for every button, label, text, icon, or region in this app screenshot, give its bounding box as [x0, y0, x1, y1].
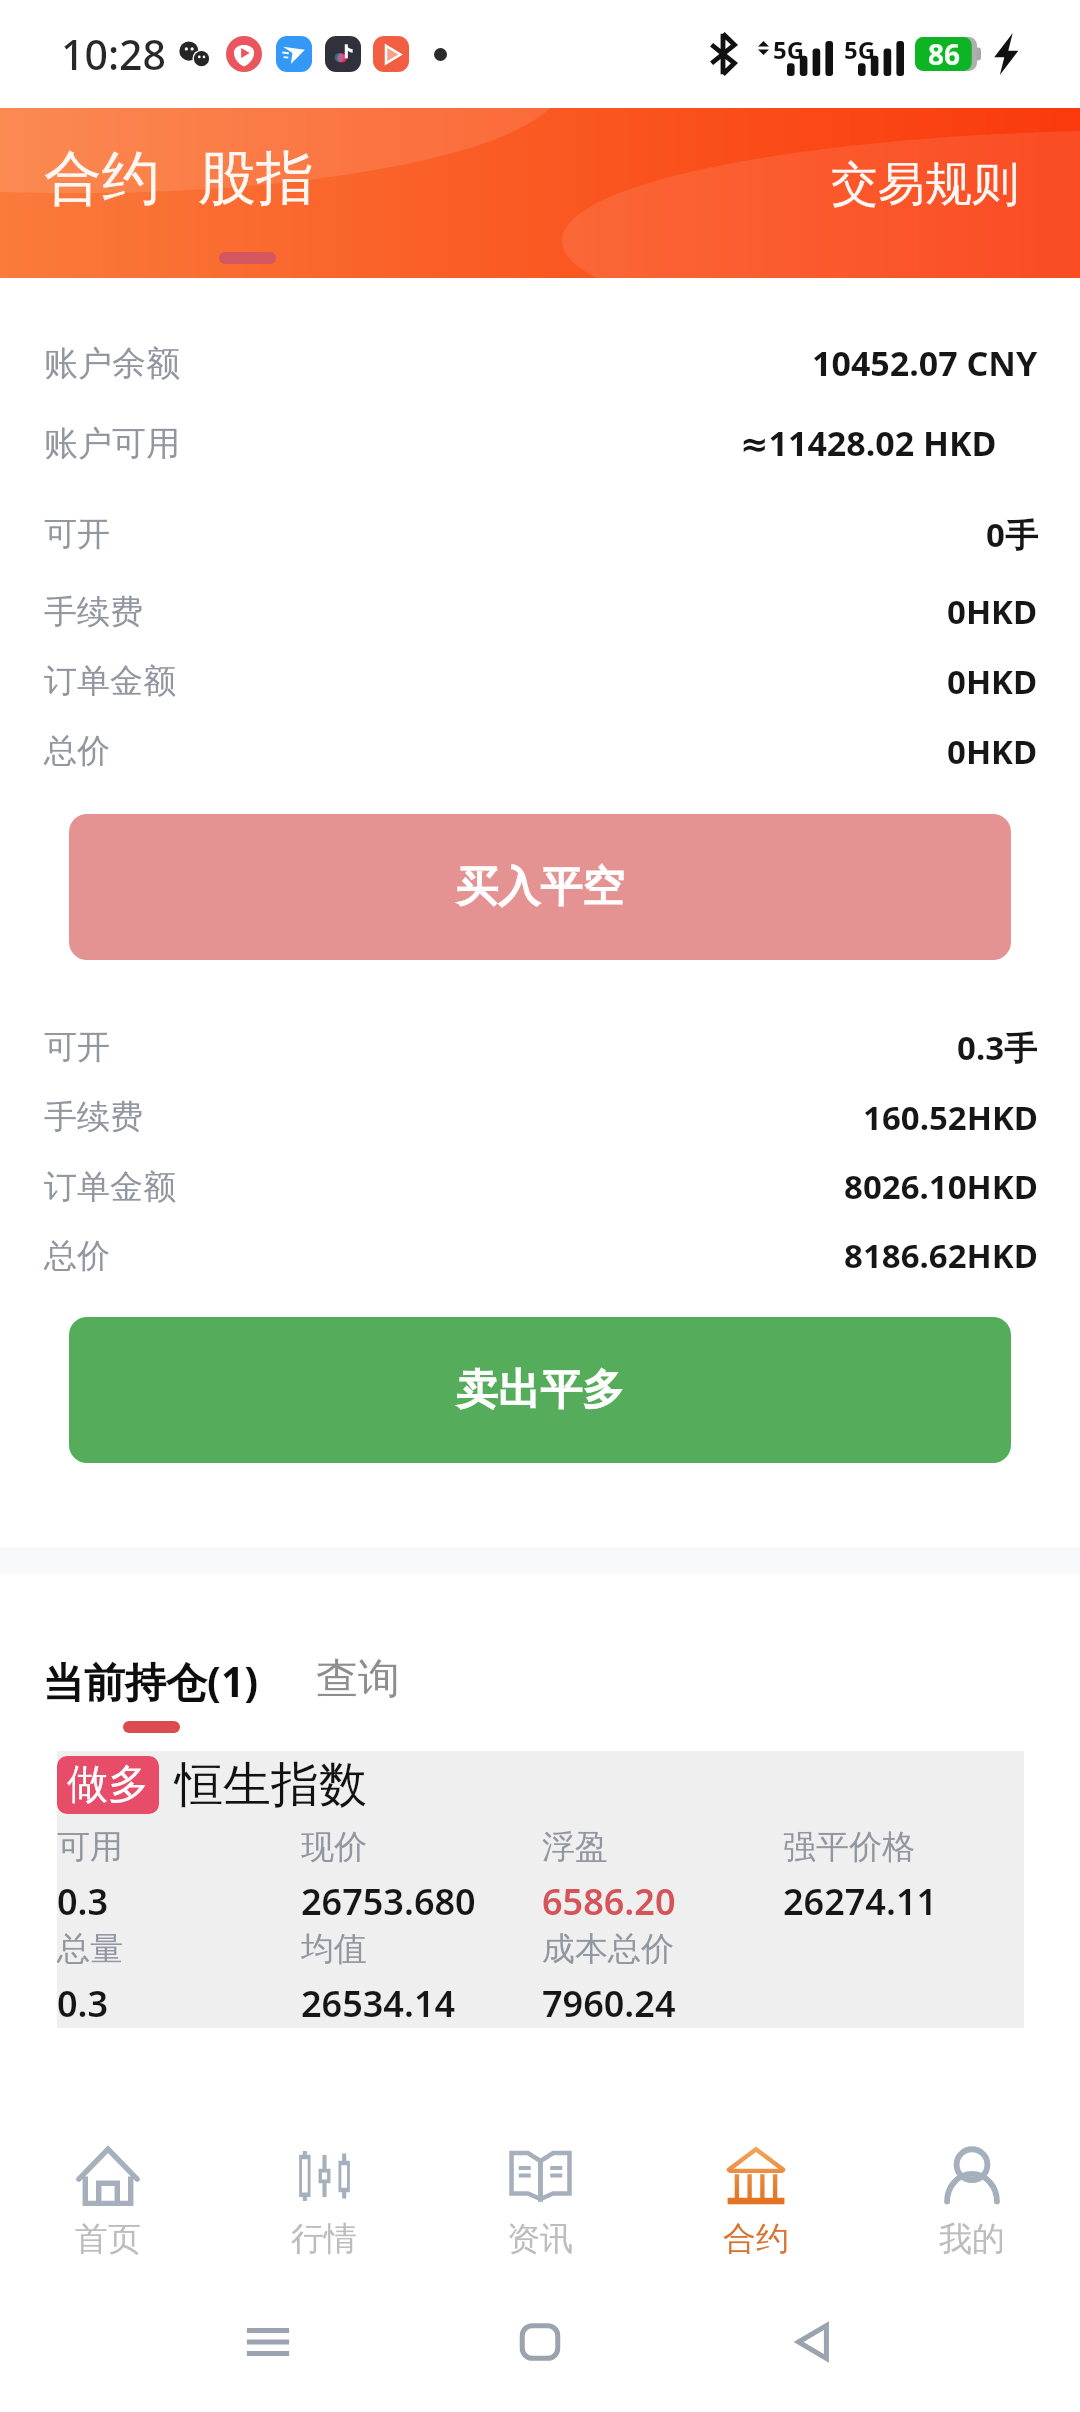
staticText: 26534.14 — [301, 1979, 456, 2028]
staticText: 资讯 — [507, 2218, 573, 2260]
staticText: 0.3 — [57, 1979, 109, 2028]
staticText: 账户可用 — [44, 422, 180, 465]
staticText: 可开 — [44, 1026, 110, 1068]
staticText: 可开 — [44, 513, 110, 555]
staticText: 10:28 — [61, 26, 166, 82]
button[interactable]: 合约 — [648, 2102, 864, 2272]
staticText: 0.3 — [57, 1877, 109, 1926]
staticText: 现价 — [301, 1826, 367, 1868]
button[interactable]: Recent apps — [230, 2304, 306, 2380]
staticText: 0HKD — [947, 659, 1038, 704]
staticText: 恒生指数 — [175, 1755, 367, 1815]
staticText: 均值 — [301, 1928, 367, 1970]
button[interactable]: 查询 — [316, 1653, 400, 1706]
button[interactable]: 我的 — [864, 2102, 1080, 2272]
staticText: 7960.24 — [542, 1979, 676, 2028]
button[interactable]: 买入平空 — [69, 814, 1011, 960]
staticText: 8186.62HKD — [844, 1233, 1038, 1278]
staticText: 订单金额 — [44, 1166, 176, 1208]
staticText: 强平价格 — [783, 1826, 915, 1868]
staticText: ≈11428.02 HKD — [740, 420, 997, 466]
staticText: 8026.10HKD — [844, 1164, 1038, 1209]
staticText: 交易规则 — [831, 155, 1019, 214]
staticText: 我的 — [939, 2218, 1005, 2260]
button[interactable]: 资讯 — [432, 2102, 648, 2272]
button[interactable]: Home — [502, 2304, 578, 2380]
staticText: 做多 — [67, 1759, 149, 1811]
staticText: 浮盈 — [542, 1826, 608, 1868]
button[interactable]: 行情 — [216, 2102, 432, 2272]
staticText: 当前持仓(1) — [43, 1653, 259, 1709]
staticText: 合约 — [44, 142, 160, 215]
staticText: 订单金额 — [44, 660, 176, 702]
button[interactable]: 当前持仓(1) — [43, 1653, 259, 1709]
staticText: 26753.680 — [301, 1877, 476, 1926]
staticText: 总价 — [44, 730, 110, 772]
button[interactable]: Back — [774, 2304, 850, 2380]
staticText: 可用 — [57, 1826, 123, 1868]
button[interactable]: 合约 — [44, 142, 160, 215]
staticText: 160.52HKD — [863, 1095, 1038, 1140]
staticText: 总价 — [44, 1235, 110, 1277]
staticText: 卖出平多 — [456, 1364, 624, 1417]
button[interactable]: 卖出平多 — [69, 1317, 1011, 1463]
staticText: 10452.07 CNY — [812, 340, 1038, 386]
staticText: 26274.11 — [783, 1877, 938, 1926]
staticText: 成本总价 — [542, 1928, 674, 1970]
button[interactable]: 做多 — [57, 1751, 1024, 2028]
button[interactable]: 股指 — [198, 142, 314, 215]
staticText: 0手 — [986, 512, 1038, 557]
button[interactable]: 交易规则 — [831, 155, 1019, 214]
staticText: 0HKD — [947, 729, 1038, 774]
staticText: 总量 — [57, 1928, 123, 1970]
staticText: 86 — [928, 35, 961, 73]
staticText: 查询 — [316, 1653, 400, 1706]
staticText: 首页 — [75, 2218, 141, 2260]
staticText: 手续费 — [44, 591, 143, 633]
button[interactable]: 首页 — [0, 2102, 216, 2272]
staticText: 6586.20 — [542, 1877, 676, 1926]
staticText: 5G — [773, 33, 805, 66]
staticText: 股指 — [198, 142, 314, 215]
staticText: 手续费 — [44, 1096, 143, 1138]
staticText: 账户余额 — [44, 342, 180, 385]
staticText: 买入平空 — [456, 861, 624, 914]
staticText: 0HKD — [947, 589, 1038, 634]
staticText: 0.3手 — [957, 1025, 1038, 1070]
staticText: 行情 — [291, 2218, 357, 2260]
staticText: 合约 — [723, 2218, 789, 2260]
staticText: 5G — [844, 33, 876, 66]
